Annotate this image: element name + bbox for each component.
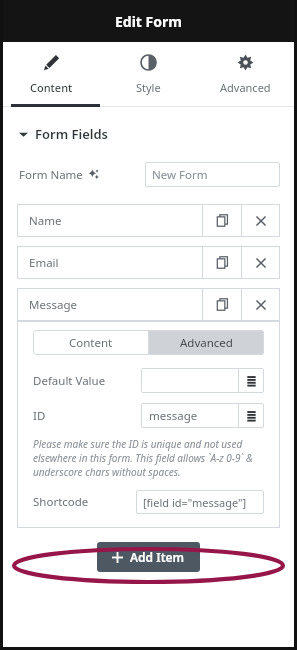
button[interactable]: [field id="message"]	[136, 490, 264, 514]
button[interactable]: Add Item	[97, 542, 200, 572]
button[interactable]: Name	[17, 204, 202, 237]
button[interactable]: Remove Email field	[242, 246, 280, 279]
button[interactable]: Duplicate Email field	[203, 246, 241, 279]
button[interactable]: Remove Message field	[242, 288, 280, 321]
staticText: Form Fields	[35, 125, 109, 143]
button[interactable]	[141, 368, 238, 393]
button[interactable]: Style	[100, 42, 197, 105]
staticText: Name	[29, 213, 62, 229]
staticText: Advanced	[180, 335, 233, 351]
button[interactable]: Dynamic tags for ID	[239, 403, 264, 428]
staticText: Email	[29, 255, 59, 271]
staticText: ID	[33, 408, 46, 424]
button[interactable]: Remove Name field	[242, 204, 280, 237]
staticText: Edit Form	[115, 12, 182, 31]
staticText: [field id="message"]	[143, 495, 247, 510]
button[interactable]: Advanced	[197, 42, 294, 105]
staticText: New Form	[152, 167, 208, 183]
staticText: Form Name	[19, 167, 83, 183]
staticText: Add Item	[130, 549, 185, 565]
staticText: message	[149, 408, 198, 424]
button[interactable]: Content	[3, 42, 100, 105]
staticText: Shortcode	[33, 494, 89, 510]
staticText: Advanced	[220, 80, 271, 95]
staticText: Default Value	[33, 373, 106, 389]
button[interactable]: Form Fields	[3, 123, 294, 145]
button[interactable]: New Form	[145, 162, 280, 187]
staticText: Style	[136, 80, 161, 95]
button[interactable]: Message	[17, 288, 202, 321]
staticText: Message	[29, 297, 77, 313]
staticText: Please make sure the ID is unique and no…	[33, 437, 264, 479]
staticText: Content	[69, 335, 113, 351]
button[interactable]: Advanced	[149, 330, 264, 355]
button[interactable]: Dynamic tags for Default Value	[239, 368, 264, 393]
staticText: Content	[30, 80, 73, 95]
button[interactable]: Duplicate Name field	[203, 204, 241, 237]
button[interactable]: Email	[17, 246, 202, 279]
button[interactable]: message	[141, 403, 238, 428]
button[interactable]: Duplicate Message field	[203, 288, 241, 321]
button[interactable]: Content	[33, 330, 148, 355]
